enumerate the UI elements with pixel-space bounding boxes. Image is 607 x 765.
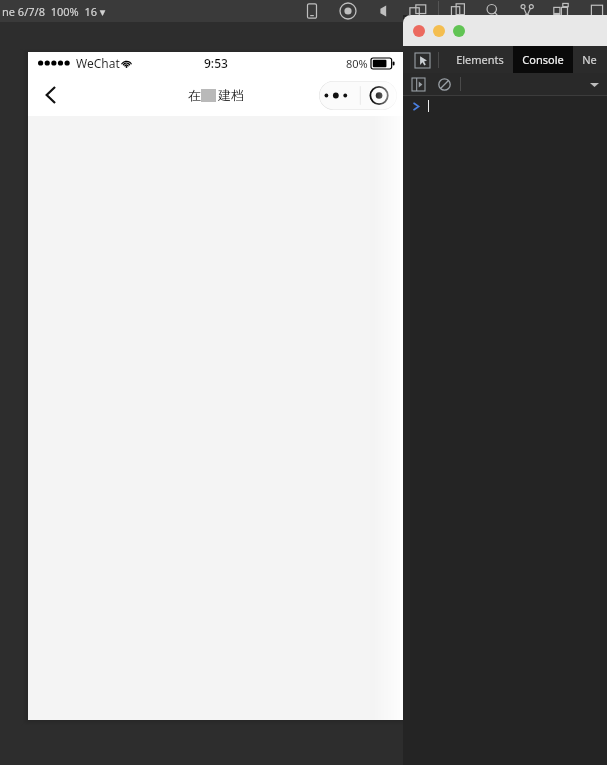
staticText: ne 6/7/8 100% 16 ▾ [2,4,106,19]
button[interactable]: Record [338,1,358,21]
button[interactable]: More [585,1,605,21]
button[interactable]: Back [34,78,68,112]
staticText: 建档 [218,87,244,103]
button[interactable]: Device [302,1,322,21]
button[interactable]: Mini program menu [319,81,397,110]
button[interactable]: Elements [447,46,513,73]
button[interactable]: Audio [374,1,394,21]
button[interactable]: Layout [551,1,571,21]
staticText: Console [522,52,564,67]
staticText: Ne [582,52,597,67]
button[interactable]: Inspect element [412,50,432,70]
button[interactable] [28,116,404,720]
button[interactable]: Zoom [453,25,465,37]
staticText: 9:53 [204,55,228,71]
button[interactable] [403,96,607,116]
button[interactable]: Clear console [435,75,453,93]
button[interactable]: Copy [449,1,469,21]
button[interactable]: Minimize [433,25,445,37]
button[interactable]: Windows [408,1,428,21]
button[interactable]: Search [483,1,503,21]
button[interactable]: Console [513,46,573,73]
staticText: 80% [346,56,368,71]
button[interactable]: Close [413,25,425,37]
staticText: WeChat [76,55,120,71]
staticText: Elements [456,52,504,67]
button[interactable]: Branches [517,1,537,21]
button[interactable]: Log level filter [586,76,602,92]
staticText: 在 [188,87,201,103]
button[interactable]: Show console sidebar [409,75,427,93]
button[interactable]: Ne [573,46,606,73]
